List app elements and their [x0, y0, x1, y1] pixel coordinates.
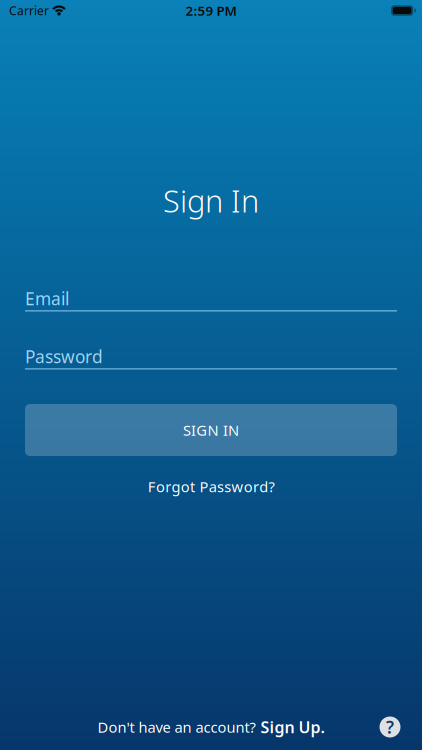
staticText: Carrier — [9, 2, 49, 18]
button[interactable]: SIGN IN — [25, 404, 397, 456]
button[interactable]: Email — [25, 287, 397, 312]
staticText: ? — [386, 715, 394, 738]
staticText: SIGN IN — [183, 420, 239, 440]
staticText: Email — [25, 287, 69, 310]
staticText: Forgot Password? — [148, 477, 274, 496]
button[interactable]: Help — [376, 713, 404, 741]
staticText: Sign Up. — [260, 716, 324, 738]
staticText: Don't have an account? — [97, 717, 255, 737]
button[interactable]: Password — [25, 345, 397, 370]
staticText: Password — [25, 345, 103, 368]
button[interactable]: Forgot Password? — [25, 477, 397, 496]
staticText: Sign In — [163, 180, 259, 221]
staticText: 2:59 PM — [185, 2, 236, 19]
button[interactable]: Don't have an account? — [97, 713, 324, 741]
